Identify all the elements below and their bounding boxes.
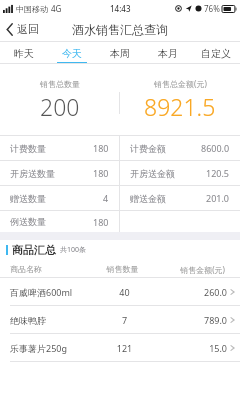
staticText: 自定义 (201, 47, 231, 60)
staticText: 商品名称 (10, 264, 94, 274)
staticText: 酒水销售汇总查询 (72, 22, 168, 37)
staticText: 昨天 (14, 47, 34, 60)
button[interactable]: 自定义 (192, 42, 240, 64)
staticText: 40 (96, 286, 153, 298)
staticText: 赠送金额 (130, 193, 166, 204)
staticText: 4G (51, 3, 62, 14)
staticText: 返回 (17, 22, 39, 36)
staticText: 中国移动 (16, 4, 48, 14)
staticText: 百威啤酒600ml (10, 286, 96, 298)
staticText: 120.5 (206, 167, 230, 179)
staticText: 14:43 (110, 3, 131, 14)
staticText: 销售数量 (94, 264, 151, 274)
button[interactable]: 返回 (0, 16, 47, 42)
staticText: 销售总金额(元) (154, 78, 207, 89)
staticText: 7 (96, 314, 153, 326)
button[interactable]: 百威啤酒600ml (0, 278, 240, 306)
staticText: 今天 (62, 47, 82, 60)
staticText: 180 (93, 167, 109, 179)
button[interactable]: 今天 (48, 42, 96, 64)
staticText: 乐事薯片250g (10, 342, 96, 354)
staticText: 4 (103, 192, 109, 204)
staticText: 开房送数量 (10, 168, 55, 179)
staticText: 商品汇总 (12, 243, 56, 257)
staticText: 例送数量 (10, 216, 46, 227)
staticText: 789.0 (153, 314, 227, 326)
button[interactable]: 绝味鸭脖 (0, 306, 240, 334)
staticText: 200 (40, 91, 80, 122)
staticText: 计费金额 (130, 143, 166, 154)
staticText: 8600.0 (201, 142, 230, 154)
staticText: 15.0 (153, 342, 227, 354)
staticText: 8921.5 (144, 91, 216, 122)
staticText: 201.0 (206, 192, 230, 204)
staticText: 76% (204, 3, 220, 14)
button[interactable]: 乐事薯片250g (0, 334, 240, 362)
staticText: 本周 (110, 47, 130, 60)
staticText: 绝味鸭脖 (10, 315, 96, 326)
button[interactable]: 本周 (96, 42, 144, 64)
button[interactable]: 本月 (144, 42, 192, 64)
staticText: 赠送数量 (10, 193, 46, 204)
staticText: 121 (96, 342, 153, 354)
staticText: 销售总数量 (40, 79, 80, 89)
staticText: 计费数量 (10, 143, 46, 154)
staticText: 180 (93, 142, 109, 154)
staticText: 180 (93, 216, 109, 228)
staticText: 销售金额(元) (151, 264, 225, 275)
staticText: 260.0 (153, 286, 227, 298)
button[interactable]: 昨天 (0, 42, 48, 64)
staticText: 本月 (158, 47, 178, 60)
staticText: 共100条 (60, 245, 87, 255)
staticText: 开房送金额 (130, 168, 175, 179)
